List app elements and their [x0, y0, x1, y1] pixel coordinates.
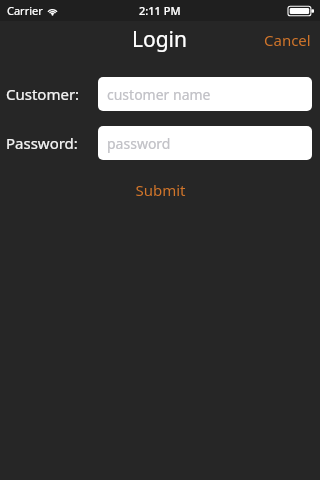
other: Battery full: [288, 5, 314, 17]
staticText: Customer:: [6, 84, 80, 104]
button[interactable]: password: [98, 126, 312, 160]
other: Wi-Fi signal: [47, 5, 58, 16]
staticText: Cancel: [264, 30, 311, 50]
staticText: Submit: [135, 180, 186, 200]
staticText: Password:: [6, 133, 78, 153]
staticText: password: [107, 134, 171, 153]
staticText: Carrier: [7, 3, 43, 18]
button[interactable]: customer name: [98, 77, 312, 111]
staticText: 2:11 PM: [139, 3, 181, 18]
staticText: Login: [132, 25, 188, 54]
button[interactable]: Cancel: [255, 24, 320, 56]
staticText: customer name: [107, 85, 211, 104]
button[interactable]: Submit: [117, 174, 204, 206]
